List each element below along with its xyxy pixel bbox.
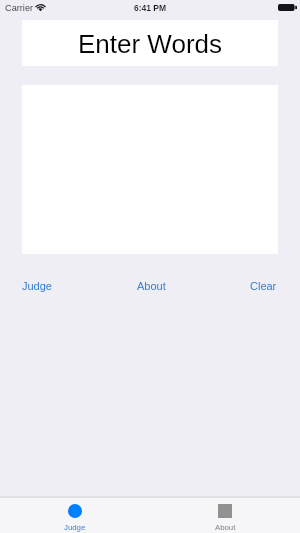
other: Wi-Fi signal <box>36 4 45 11</box>
button[interactable]: Judge <box>0 498 150 533</box>
button[interactable]: Judge <box>22 280 52 292</box>
staticText: 6:41 PM <box>134 3 167 12</box>
staticText: Judge <box>22 280 52 292</box>
staticText: Clear <box>250 280 277 292</box>
staticText: Carrier <box>5 3 34 13</box>
staticText: About <box>137 280 166 292</box>
button[interactable]: About <box>150 498 300 533</box>
staticText: About <box>215 523 236 532</box>
button[interactable]: About <box>137 280 166 292</box>
staticText: Judge <box>64 523 86 532</box>
button[interactable]: Clear <box>250 280 277 292</box>
other: Battery full <box>278 4 297 11</box>
button[interactable]: Enter Words <box>22 20 278 66</box>
staticText: Enter Words <box>78 29 223 58</box>
